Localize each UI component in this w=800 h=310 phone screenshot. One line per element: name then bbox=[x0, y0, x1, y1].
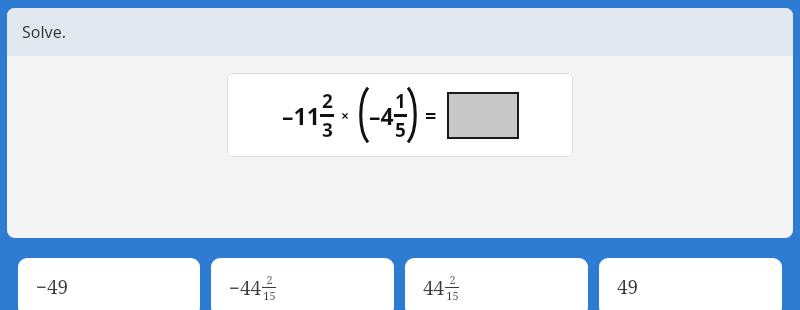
staticText: 44 bbox=[423, 275, 445, 301]
button[interactable]: 49 bbox=[599, 258, 782, 310]
staticText: 15 bbox=[446, 288, 459, 303]
staticText: 15 bbox=[263, 288, 276, 303]
staticText: –11 bbox=[282, 100, 320, 131]
button[interactable]: 44 bbox=[405, 258, 588, 310]
button[interactable]: −49 bbox=[18, 258, 200, 310]
staticText: 5 bbox=[395, 117, 406, 143]
staticText: = bbox=[425, 102, 437, 129]
button[interactable]: −44 bbox=[211, 258, 394, 310]
staticText: 2 bbox=[449, 272, 456, 287]
staticText: Solve. bbox=[22, 21, 67, 43]
staticText: × bbox=[341, 106, 350, 125]
staticText: 49 bbox=[617, 274, 639, 300]
staticText: 2 bbox=[322, 88, 333, 114]
staticText: 2 bbox=[266, 272, 273, 287]
staticText: −44 bbox=[229, 275, 262, 301]
staticText: 1 bbox=[395, 88, 406, 114]
staticText: −49 bbox=[36, 274, 69, 300]
staticText: –4 bbox=[369, 100, 394, 131]
staticText: 3 bbox=[322, 117, 333, 143]
